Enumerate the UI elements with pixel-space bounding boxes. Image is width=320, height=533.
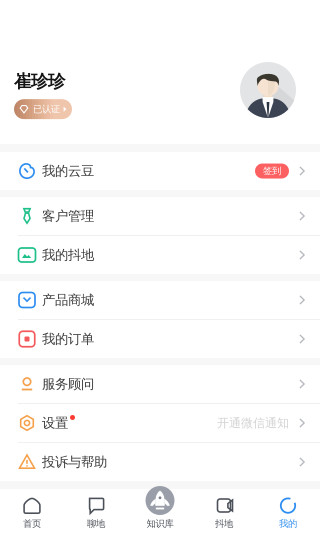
button[interactable]: 我的云豆 — [0, 152, 320, 190]
button[interactable]: 投诉与帮助 — [0, 443, 320, 481]
button[interactable]: 首页 — [0, 489, 64, 533]
button[interactable]: 知识库 — [128, 489, 192, 533]
staticText: 设置 — [42, 415, 68, 431]
staticText: 我的抖地 — [42, 247, 94, 263]
button[interactable]: 设置 — [0, 404, 320, 442]
button[interactable]: 服务顾问 — [0, 365, 320, 403]
button[interactable]: 抖地 — [192, 489, 256, 533]
button[interactable]: 已认证 — [14, 99, 72, 119]
staticText: 投诉与帮助 — [42, 454, 107, 470]
staticText: 客户管理 — [42, 208, 94, 224]
staticText: 我的 — [279, 518, 297, 529]
button[interactable]: 我的抖地 — [0, 236, 320, 274]
staticText: 首页 — [23, 518, 41, 529]
staticText: 崔珍珍 — [14, 71, 65, 92]
staticText: 开通微信通知 — [217, 416, 289, 430]
staticText: 产品商城 — [42, 292, 94, 308]
staticText: 抖地 — [215, 518, 233, 529]
button[interactable]: 我的订单 — [0, 320, 320, 358]
staticText: 已认证 — [33, 103, 60, 115]
button[interactable]: 客户管理 — [0, 197, 320, 235]
button[interactable]: 聊地 — [64, 489, 128, 533]
staticText: 服务顾问 — [42, 376, 94, 392]
staticText: 我的云豆 — [42, 163, 94, 179]
button[interactable]: 我的 — [256, 489, 320, 533]
staticText: 签到 — [263, 165, 281, 177]
staticText: 我的订单 — [42, 331, 94, 347]
staticText: 知识库 — [146, 518, 173, 529]
staticText: 聊地 — [87, 518, 105, 529]
button[interactable]: 产品商城 — [0, 281, 320, 319]
